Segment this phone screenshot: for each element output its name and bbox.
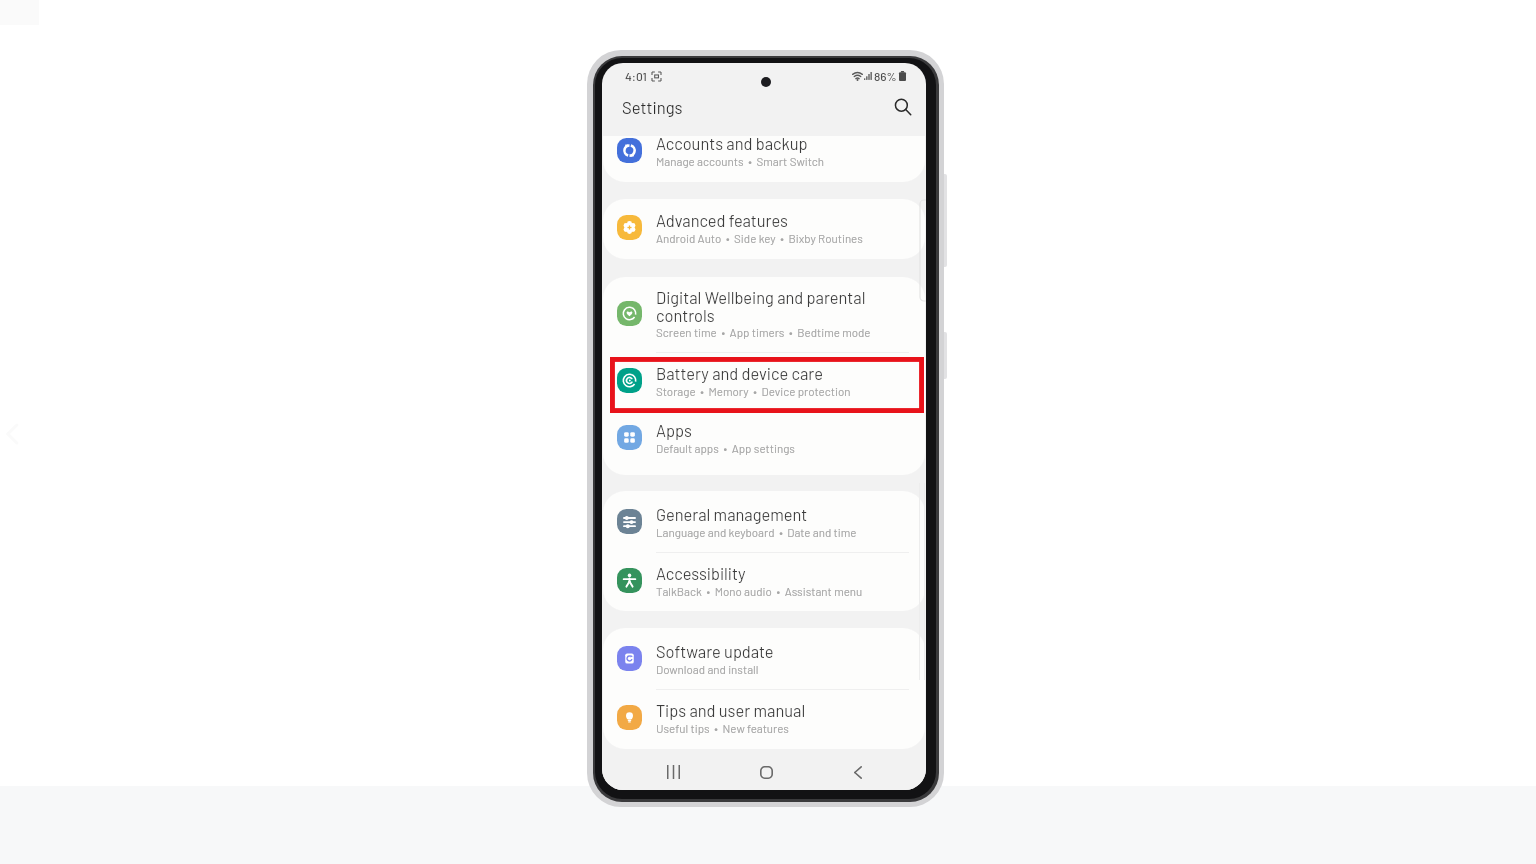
button[interactable]: Recent apps (656, 755, 690, 789)
staticText: Android Auto • Side key • Bixby Routines (656, 231, 863, 245)
staticText: Apps (656, 421, 692, 441)
staticText: General management (656, 505, 808, 525)
staticText: TalkBack • Mono audio • Assistant menu (656, 584, 863, 598)
button[interactable] (603, 199, 925, 259)
staticText: Download and install (656, 662, 759, 676)
button[interactable] (603, 352, 925, 410)
staticText: Default apps • App settings (656, 441, 795, 455)
staticText: Software update (656, 642, 774, 662)
staticText: Accounts and backup (656, 134, 808, 154)
staticText: Settings (622, 97, 683, 117)
staticText: Battery and device care (656, 364, 823, 384)
staticText: Accessibility (656, 564, 746, 584)
staticText: Language and keyboard • Date and time (656, 525, 857, 539)
staticText: Screen time • App timers • Bedtime mode (656, 325, 871, 339)
staticText: Storage • Memory • Device protection (656, 384, 851, 398)
button[interactable]: Home (749, 755, 783, 789)
button[interactable] (603, 552, 925, 611)
staticText: Digital Wellbeing and parental controls (656, 288, 866, 325)
button[interactable] (603, 136, 925, 182)
staticText: Manage accounts • Smart Switch (656, 154, 825, 168)
button[interactable] (603, 410, 925, 475)
staticText: 4:01 (625, 69, 647, 83)
staticText: Advanced features (656, 211, 788, 231)
staticText: Tips and user manual (656, 701, 806, 721)
staticText: Useful tips • New features (656, 721, 789, 735)
button[interactable]: Search (888, 92, 918, 122)
button[interactable]: Back (841, 755, 875, 789)
button[interactable] (603, 628, 925, 688)
button[interactable] (603, 491, 925, 552)
button[interactable] (603, 277, 925, 352)
button[interactable] (603, 689, 925, 750)
staticText: 86% (874, 69, 897, 83)
